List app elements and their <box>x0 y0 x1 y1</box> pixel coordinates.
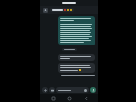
button[interactable]: Send voice message <box>90 87 96 93</box>
button[interactable]: Emoji <box>84 89 87 92</box>
button[interactable] <box>58 54 95 61</box>
button[interactable]: Camera <box>49 87 55 93</box>
button[interactable] <box>58 16 95 45</box>
button[interactable] <box>58 63 95 73</box>
button[interactable]: Home <box>65 94 73 102</box>
button[interactable]: Back <box>82 94 90 102</box>
button[interactable] <box>40 6 98 14</box>
button[interactable]: Emoji <box>56 87 89 93</box>
button[interactable]: Add attachment <box>42 87 48 93</box>
button[interactable]: Recent apps <box>49 94 57 102</box>
